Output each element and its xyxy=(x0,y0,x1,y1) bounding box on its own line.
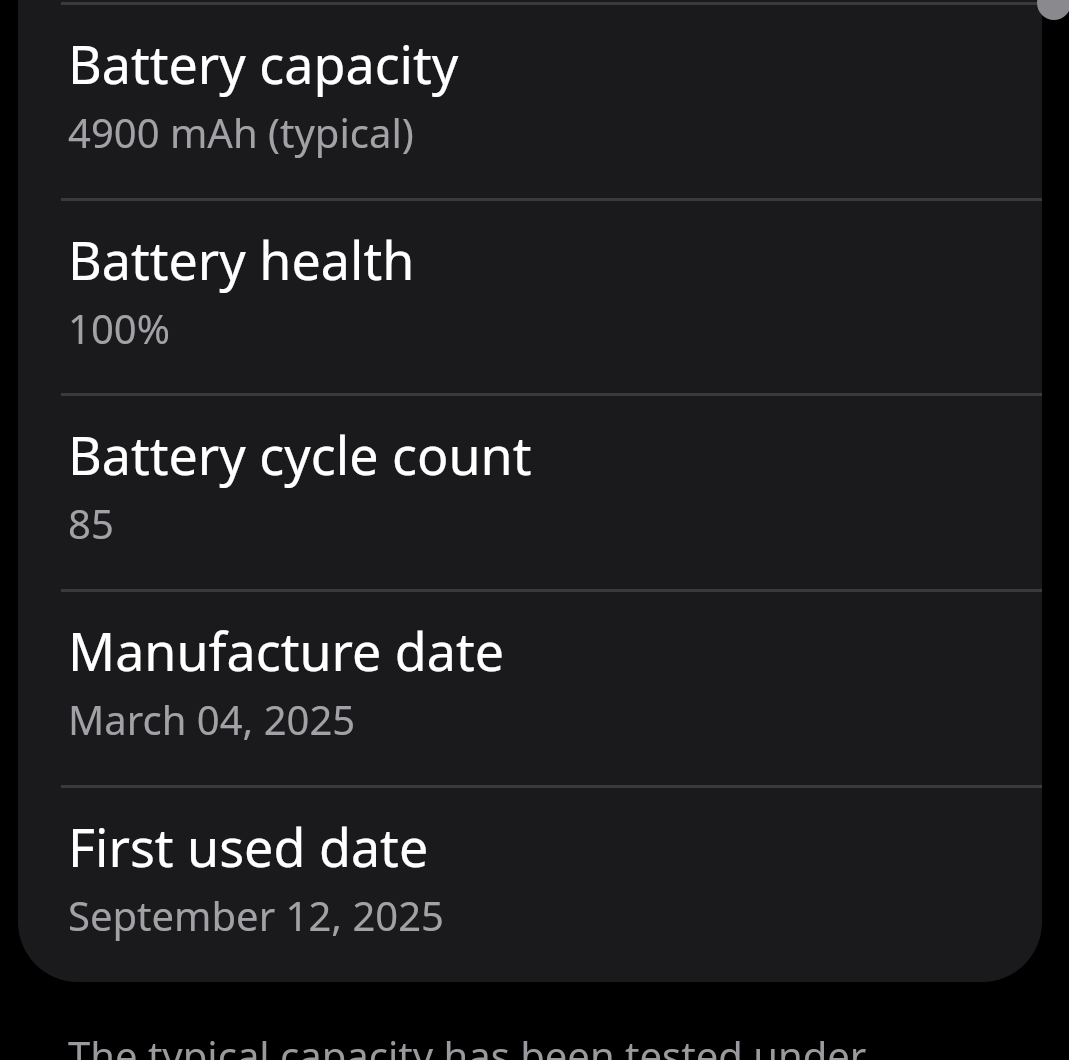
staticText: First used date xyxy=(68,811,429,882)
staticText: Battery cycle count xyxy=(68,419,532,490)
staticText: 4900 mAh (typical) xyxy=(68,105,414,159)
button[interactable]: First used date xyxy=(18,785,1042,981)
button[interactable]: Manufacture date xyxy=(18,589,1042,785)
button[interactable]: Battery cycle count xyxy=(18,393,1042,589)
staticText: September 12, 2025 xyxy=(68,888,444,942)
staticText: 100% xyxy=(68,301,170,355)
staticText: The typical capacity has been tested und… xyxy=(68,1028,1008,1060)
staticText: Manufacture date xyxy=(68,615,505,686)
staticText: Battery health xyxy=(68,224,415,295)
staticText: March 04, 2025 xyxy=(68,692,356,746)
staticText: Battery capacity xyxy=(68,28,459,99)
staticText: 85 xyxy=(68,496,114,550)
button[interactable]: Battery capacity xyxy=(18,2,1042,198)
button[interactable]: Battery health xyxy=(18,198,1042,394)
